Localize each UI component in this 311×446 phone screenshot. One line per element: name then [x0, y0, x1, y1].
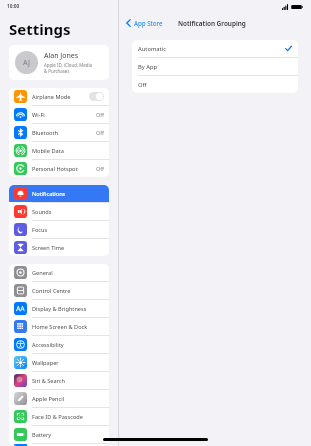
button[interactable]: App Store — [124, 17, 165, 29]
staticText: Battery — [32, 431, 104, 439]
button[interactable]: Accessibility — [9, 336, 109, 353]
button[interactable]: Focus — [9, 221, 109, 238]
button[interactable]: Control Centre — [9, 282, 109, 299]
button[interactable]: Sounds — [9, 203, 109, 220]
staticText: Notifications — [32, 190, 104, 198]
staticText: Personal Hotspot — [32, 165, 96, 173]
staticText: Display & Brightness — [32, 305, 104, 313]
staticText: Alan Jones — [44, 51, 79, 61]
button[interactable]: Off — [132, 76, 298, 93]
staticText: App Store — [134, 19, 163, 27]
staticText: Off — [96, 129, 104, 136]
button[interactable]: Notifications — [9, 185, 109, 202]
button[interactable]: Battery — [9, 426, 109, 443]
staticText: Wi-Fi — [32, 111, 96, 119]
staticText: By App — [138, 63, 292, 71]
button[interactable]: Face ID & Passcode — [9, 408, 109, 425]
staticText: Apple Pencil — [32, 395, 104, 403]
staticText: Face ID & Passcode — [32, 413, 104, 421]
button[interactable]: Personal Hotspot — [9, 160, 109, 177]
button[interactable]: Automatic — [132, 40, 298, 57]
staticText: Off — [96, 111, 104, 118]
staticText: Accessibility — [32, 341, 104, 349]
staticText: Siri & Search — [32, 377, 104, 385]
button[interactable]: Airplane Mode — [9, 88, 109, 105]
button[interactable]: Apple Pencil — [9, 390, 109, 407]
staticText: Wallpaper — [32, 359, 104, 367]
staticText: Focus — [32, 226, 104, 234]
button[interactable]: AJ — [9, 45, 109, 80]
staticText: Notification Grouping — [178, 19, 246, 28]
staticText: Settings — [9, 19, 71, 39]
button[interactable]: Privacy — [9, 444, 109, 446]
staticText: Home Screen & Dock — [32, 323, 104, 331]
button[interactable]: Wi-Fi — [9, 106, 109, 123]
staticText: Control Centre — [32, 287, 104, 295]
button[interactable]: Screen Time — [9, 239, 109, 256]
button[interactable]: Siri & Search — [9, 372, 109, 389]
button[interactable]: Display & Brightness — [9, 300, 109, 317]
staticText: Off — [138, 81, 292, 89]
staticText: General — [32, 269, 104, 277]
staticText: Off — [96, 165, 104, 172]
button[interactable]: Wallpaper — [9, 354, 109, 371]
staticText: Sounds — [32, 208, 104, 216]
button[interactable]: Bluetooth — [9, 124, 109, 141]
staticText: Screen Time — [32, 244, 104, 252]
staticText: Apple ID, iCloud, Media & Purchases — [44, 62, 92, 74]
staticText: Mobile Data — [32, 147, 104, 155]
staticText: Bluetooth — [32, 129, 96, 137]
button[interactable]: Home Screen & Dock — [9, 318, 109, 335]
button[interactable]: General — [9, 264, 109, 281]
staticText: AJ — [23, 58, 30, 68]
staticText: 10:00 — [7, 3, 20, 10]
button[interactable]: By App — [132, 58, 298, 75]
staticText: Automatic — [138, 45, 285, 53]
button[interactable]: Mobile Data — [9, 142, 109, 159]
staticText: Airplane Mode — [32, 93, 89, 101]
